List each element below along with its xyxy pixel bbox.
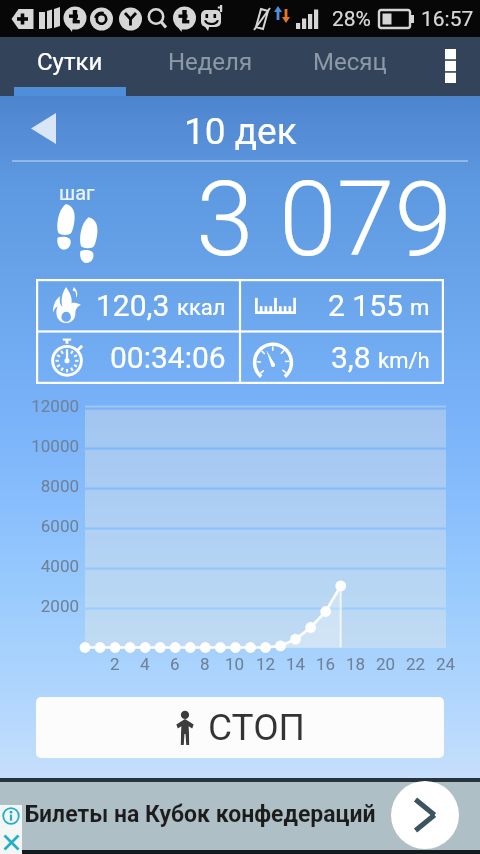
staticText: 00:34:06 xyxy=(110,340,226,375)
staticText: 8 xyxy=(200,654,210,674)
staticText: ккал xyxy=(177,295,226,321)
staticText: СТОП xyxy=(208,706,305,749)
staticText: шаг xyxy=(59,181,95,204)
button[interactable]: Неделя xyxy=(140,37,280,96)
staticText: Билеты на Кубок конфедераций xyxy=(25,801,376,828)
staticText: 10 xyxy=(225,654,245,674)
staticText: 20 xyxy=(376,654,396,674)
staticText: 22 xyxy=(406,654,426,674)
staticText: 4000 xyxy=(40,556,79,576)
staticText: 16 xyxy=(316,654,336,674)
button[interactable]: Open advertisement xyxy=(391,781,459,849)
staticText: 28% xyxy=(332,7,371,32)
staticText: 120,3 xyxy=(96,288,170,323)
button[interactable]: 3,8 xyxy=(240,331,444,384)
staticText: 2000 xyxy=(40,596,79,616)
staticText: 2 xyxy=(110,654,120,674)
button[interactable]: 120,3 xyxy=(36,279,240,331)
button[interactable]: Previous day xyxy=(16,106,70,150)
staticText: 8000 xyxy=(40,476,79,496)
staticText: 3,8 xyxy=(331,340,371,375)
staticText: Месяц xyxy=(313,48,387,76)
staticText: 14 xyxy=(286,654,306,674)
staticText: 16:57 xyxy=(421,7,474,32)
button[interactable]: Ad information xyxy=(0,778,480,854)
staticText: 3 079 xyxy=(196,159,453,281)
staticText: Сутки xyxy=(37,48,103,76)
button[interactable]: 2 155 xyxy=(240,279,444,331)
staticText: 24 xyxy=(436,654,456,674)
button[interactable]: Close advertisement xyxy=(3,834,20,851)
button[interactable]: СТОП xyxy=(36,697,444,758)
staticText: m xyxy=(410,295,430,321)
staticText: 10000 xyxy=(31,436,79,456)
button[interactable]: Ad information xyxy=(2,807,20,825)
staticText: 6000 xyxy=(40,516,79,536)
button[interactable]: Сутки xyxy=(0,37,140,96)
staticText: 6 xyxy=(170,654,180,674)
button[interactable]: More options xyxy=(420,37,480,96)
staticText: Неделя xyxy=(168,48,253,76)
staticText: 12 xyxy=(256,654,276,674)
staticText: 12000 xyxy=(31,396,79,416)
staticText: 10 дек xyxy=(184,110,297,153)
button[interactable]: 00:34:06 xyxy=(36,331,240,384)
button[interactable]: Месяц xyxy=(280,37,420,96)
staticText: 18 xyxy=(346,654,366,674)
staticText: 2 155 xyxy=(328,288,403,323)
staticText: 4 xyxy=(140,654,150,674)
staticText: km/h xyxy=(378,348,430,374)
